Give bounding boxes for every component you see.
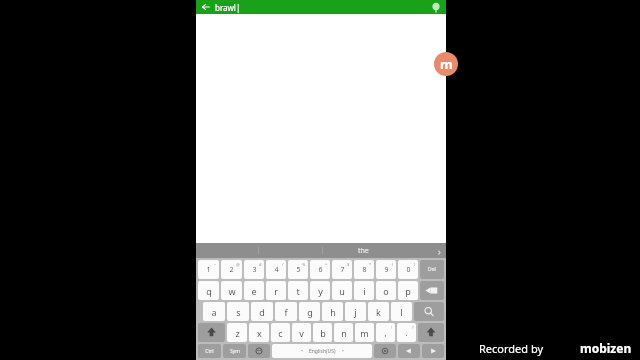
staticText: › — [438, 245, 441, 257]
button[interactable]: shift — [198, 323, 225, 342]
button[interactable]: Del — [420, 260, 444, 279]
button[interactable]: h — [322, 302, 343, 321]
staticText: w — [228, 285, 236, 297]
button[interactable]: 0 — [398, 260, 418, 279]
button[interactable]: shift — [418, 323, 444, 342]
staticText: j — [354, 306, 357, 318]
staticText: q — [206, 285, 212, 297]
staticText: / — [282, 262, 284, 267]
button[interactable]: mic — [374, 344, 396, 358]
staticText: the — [358, 246, 369, 256]
staticText: mobizen — [580, 340, 632, 356]
button[interactable]: search — [414, 302, 444, 321]
staticText: ( — [392, 262, 394, 267]
button[interactable]: g — [299, 302, 320, 321]
staticText: i — [363, 285, 366, 297]
button[interactable]: t — [288, 281, 308, 300]
button[interactable]: d — [251, 302, 273, 321]
staticText: v — [299, 327, 304, 339]
button[interactable]: k — [368, 302, 389, 321]
staticText: @ — [236, 262, 240, 267]
staticText: l — [400, 306, 403, 318]
button[interactable]: Sym — [223, 344, 246, 358]
button[interactable]: m — [355, 323, 374, 342]
button[interactable]: Back — [200, 1, 212, 13]
staticText: ) — [414, 262, 416, 267]
button[interactable]: 6 — [310, 260, 330, 279]
button[interactable]: q — [198, 281, 219, 300]
staticText: % — [302, 262, 306, 267]
button[interactable]: b — [313, 323, 332, 342]
button[interactable]: 9 — [376, 260, 396, 279]
button[interactable]: a — [203, 302, 225, 321]
button[interactable]: p — [398, 281, 418, 300]
staticText: r — [274, 285, 278, 297]
staticText: u — [339, 285, 345, 297]
staticText: a — [211, 306, 217, 318]
button[interactable]: w — [221, 281, 242, 300]
button[interactable]: right — [422, 344, 444, 358]
button[interactable]: 7 — [332, 260, 352, 279]
staticText: b — [320, 327, 326, 339]
button[interactable]: f — [275, 302, 297, 321]
button[interactable]: emoji — [248, 344, 270, 358]
button[interactable]: c — [271, 323, 290, 342]
staticText: Sym — [230, 348, 240, 355]
staticText: ^ — [325, 262, 328, 267]
staticText: y — [318, 285, 323, 297]
button[interactable]: n — [334, 323, 353, 342]
button[interactable]: z — [227, 323, 247, 342]
button[interactable]: o — [376, 281, 396, 300]
staticText: Recorded by — [479, 341, 544, 356]
staticText: 2 — [229, 265, 234, 275]
button[interactable]: i — [354, 281, 374, 300]
button[interactable]: r — [266, 281, 286, 300]
staticText: • — [342, 348, 344, 355]
button[interactable]: Voice search — [430, 1, 442, 13]
staticText: s — [236, 306, 241, 318]
button[interactable]: , — [376, 323, 395, 342]
staticText: o — [383, 285, 389, 297]
button[interactable]: 1 — [198, 260, 219, 279]
staticText: 6 — [318, 265, 323, 275]
staticText: 1 — [206, 265, 211, 275]
staticText: Ctrl — [205, 348, 214, 355]
button[interactable]: left — [398, 344, 420, 358]
staticText: m — [360, 327, 369, 339]
staticText: p — [405, 285, 411, 297]
button[interactable]: back — [420, 281, 444, 300]
button[interactable]: Ctrl — [198, 344, 221, 358]
button[interactable]: 8 — [354, 260, 374, 279]
staticText: n — [341, 327, 347, 339]
staticText: . — [405, 327, 408, 338]
staticText: , — [384, 327, 387, 338]
button[interactable]: v — [292, 323, 311, 342]
button[interactable]: u — [332, 281, 352, 300]
staticText: ? — [412, 325, 414, 330]
button[interactable]: x — [249, 323, 269, 342]
staticText: * — [369, 262, 372, 267]
button[interactable]: 4 — [266, 260, 286, 279]
staticText: ! — [391, 325, 393, 330]
staticText: f — [284, 306, 288, 318]
button[interactable]: 2 — [221, 260, 242, 279]
staticText: 8 — [362, 265, 367, 275]
staticText: 4 — [274, 265, 279, 275]
button[interactable]: the — [196, 243, 446, 258]
button[interactable]: • — [272, 344, 372, 358]
button[interactable]: s — [227, 302, 249, 321]
staticText: h — [330, 306, 336, 318]
button[interactable]: j — [345, 302, 366, 321]
button[interactable]: l — [391, 302, 412, 321]
staticText: g — [307, 306, 313, 318]
button[interactable]: y — [310, 281, 330, 300]
staticText: Del — [428, 266, 436, 273]
staticText: 0 — [406, 265, 411, 275]
staticText: e — [251, 285, 257, 297]
staticText: $ — [347, 262, 350, 267]
button[interactable]: e — [244, 281, 264, 300]
staticText: 7 — [340, 265, 345, 275]
button[interactable]: 5 — [288, 260, 308, 279]
button[interactable]: 3 — [244, 260, 264, 279]
button[interactable]: . — [397, 323, 416, 342]
